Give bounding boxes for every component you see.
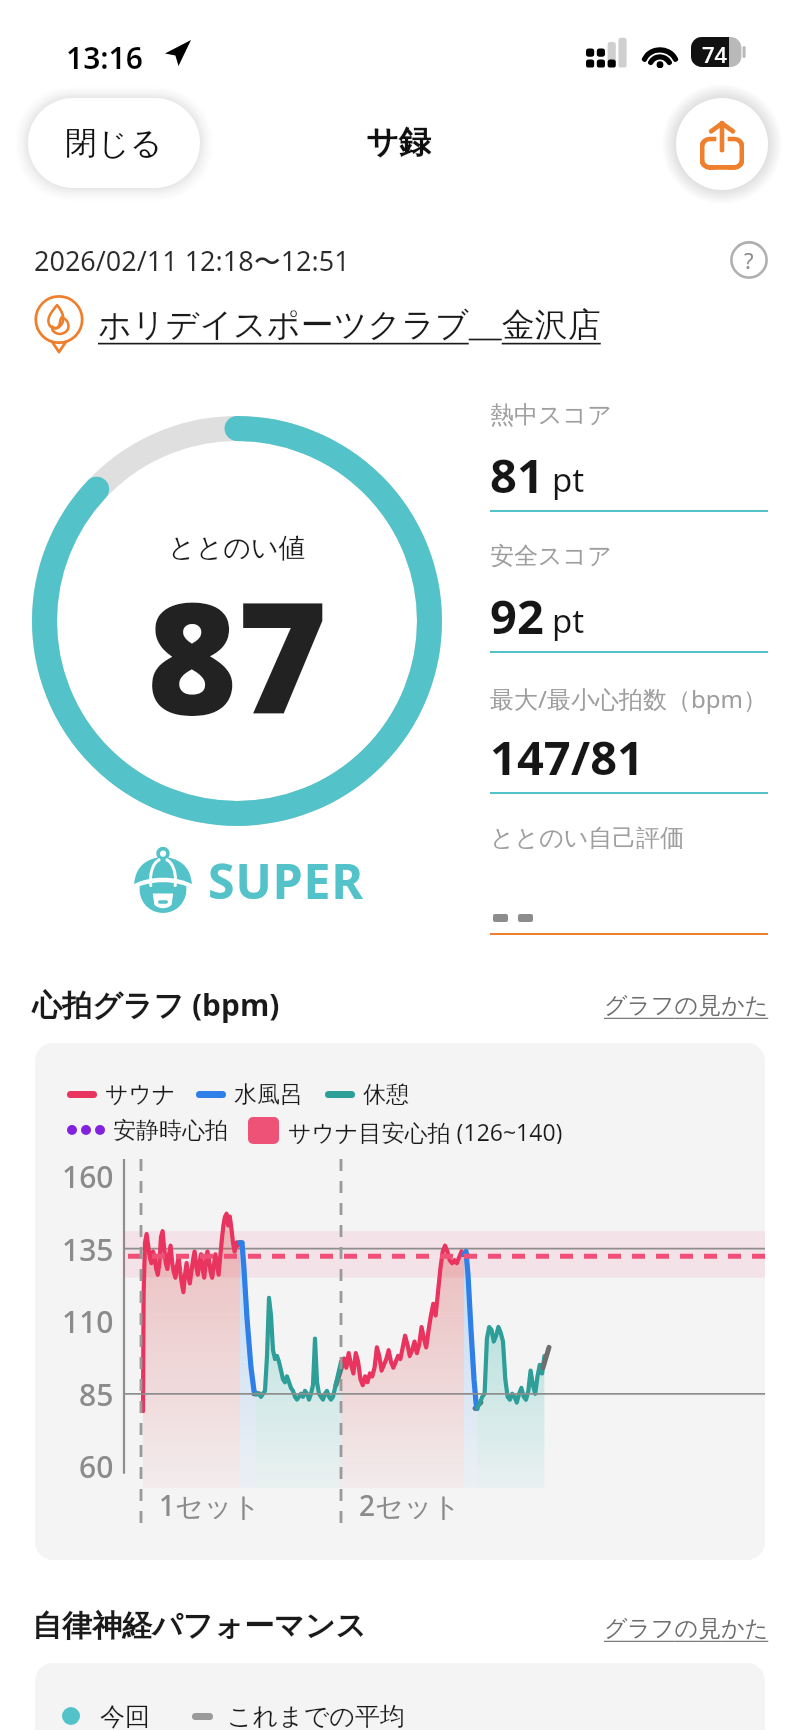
staticText: 13:16 — [66, 37, 143, 78]
staticText: サウナ — [105, 1080, 176, 1108]
staticText: 最大/最小心拍数（bpm） — [490, 682, 767, 715]
staticText: 160 — [62, 1156, 114, 1197]
staticText: SUPER — [208, 848, 364, 913]
staticText: 81 — [490, 443, 544, 507]
button[interactable]: 閉じる — [28, 98, 200, 188]
staticText: ととのい値 — [168, 531, 306, 565]
staticText: 2026/02/11 12:18〜12:51 — [34, 242, 350, 279]
staticText: ? — [744, 245, 754, 275]
staticText: 135 — [62, 1229, 114, 1270]
button[interactable]: Help — [730, 241, 768, 279]
staticText: 水風呂 — [234, 1080, 303, 1108]
staticText: これまでの平均 — [227, 1701, 405, 1730]
button[interactable]: グラフの見かた — [604, 991, 769, 1020]
staticText: 60 — [79, 1446, 114, 1487]
staticText: 熱中スコア — [490, 400, 612, 430]
staticText: 閉じる — [65, 123, 163, 163]
staticText: 2セット — [359, 1486, 461, 1524]
staticText: 87 — [147, 549, 328, 759]
button[interactable]: ホリデイスポーツクラブ 金沢店 — [30, 292, 601, 354]
staticText: 休憩 — [363, 1080, 409, 1108]
staticText: pt — [552, 598, 585, 643]
staticText: グラフの見かた — [604, 1614, 769, 1643]
staticText: 安全スコア — [490, 541, 612, 571]
staticText: グラフの見かた — [604, 991, 769, 1020]
staticText: pt — [552, 457, 585, 502]
staticText: 147/81 — [490, 725, 644, 789]
staticText: ととのい自己評価 — [490, 823, 685, 853]
button[interactable]: Share — [676, 98, 768, 190]
staticText: 1セット — [159, 1486, 261, 1524]
staticText: ホリデイスポーツクラブ 金沢店 — [98, 301, 601, 346]
button[interactable]: グラフの見かた — [604, 1614, 769, 1643]
staticText: 安静時心拍 — [113, 1116, 228, 1144]
staticText: 74 — [702, 39, 728, 69]
staticText: 110 — [62, 1301, 114, 1342]
staticText: 今回 — [100, 1701, 150, 1730]
staticText: 92 — [490, 584, 544, 648]
staticText: サ録 — [366, 122, 431, 162]
staticText: 心拍グラフ (bpm) — [32, 984, 280, 1025]
staticText: 自律神経パフォーマンス — [32, 1607, 367, 1645]
staticText: サウナ目安心拍 (126~140) — [288, 1116, 563, 1144]
staticText: 85 — [79, 1374, 114, 1415]
